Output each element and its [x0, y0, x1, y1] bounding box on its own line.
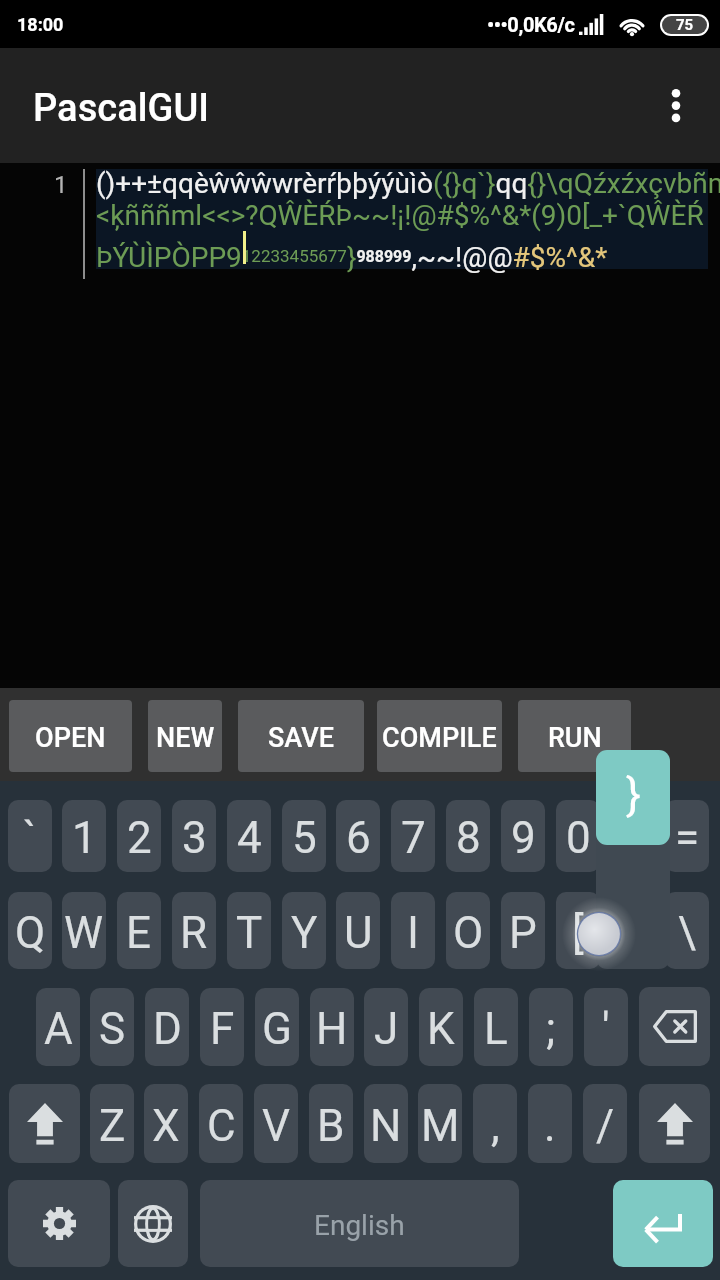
button[interactable]: 9	[501, 800, 545, 872]
button[interactable]: D	[145, 988, 189, 1066]
staticText: }	[626, 769, 641, 821]
button[interactable]: 6	[336, 800, 380, 872]
button[interactable]: E	[117, 892, 161, 969]
button[interactable]: /	[583, 1084, 627, 1163]
button[interactable]: 2	[117, 800, 161, 872]
staticText: C	[207, 1100, 236, 1152]
staticText: X	[152, 1100, 180, 1152]
button[interactable]: U	[336, 892, 380, 969]
button[interactable]: Shift	[639, 1084, 710, 1163]
staticText: [	[572, 907, 584, 959]
staticText: V	[262, 1100, 291, 1152]
button[interactable]: S	[90, 988, 134, 1066]
button[interactable]: Key preview }	[596, 750, 670, 845]
staticText: ;	[546, 1003, 556, 1055]
button[interactable]: Change language	[118, 1180, 188, 1267]
staticText: U	[344, 907, 373, 959]
staticText: 1	[54, 171, 68, 199]
staticText: 5	[292, 812, 317, 864]
button[interactable]: O	[446, 892, 490, 969]
staticText: ,	[491, 1100, 500, 1152]
button[interactable]: =	[665, 800, 709, 872]
staticText: F	[210, 1003, 235, 1055]
button[interactable]: RUN	[518, 700, 631, 772]
button[interactable]: '	[584, 988, 628, 1066]
staticText: 6	[346, 812, 371, 864]
button[interactable]: Z	[90, 1084, 134, 1163]
button[interactable]: 8	[446, 800, 490, 872]
staticText: COMPILE	[382, 722, 497, 754]
button[interactable]: COMPILE	[377, 700, 502, 772]
staticText: SAVE	[268, 722, 335, 754]
button[interactable]: OPEN	[9, 700, 132, 772]
staticText: A	[44, 1003, 73, 1055]
button[interactable]: Y	[282, 892, 326, 969]
button[interactable]: English	[200, 1180, 519, 1267]
staticText: Q	[15, 907, 46, 959]
staticText: N	[370, 1100, 402, 1152]
staticText: -	[626, 812, 639, 864]
staticText: 7	[401, 812, 426, 864]
button[interactable]: Q	[8, 892, 52, 969]
button[interactable]: 4	[227, 800, 271, 872]
staticText: `	[23, 812, 37, 864]
button[interactable]: M	[418, 1084, 462, 1163]
button[interactable]: K	[419, 988, 463, 1066]
button[interactable]: P	[501, 892, 545, 969]
button[interactable]: F	[200, 988, 244, 1066]
staticText: I	[407, 907, 419, 959]
button[interactable]: Shift	[9, 1084, 80, 1163]
button[interactable]: .	[528, 1084, 572, 1163]
button[interactable]: R	[172, 892, 216, 969]
button[interactable]: SAVE	[238, 700, 364, 772]
button[interactable]: `	[8, 800, 52, 872]
button[interactable]: 1	[62, 800, 106, 872]
staticText: ()++±qqèŵŵŵwrèrŕþþýýùìò({}q`}qq{}\qQźxźx…	[96, 167, 720, 274]
button[interactable]: C	[199, 1084, 243, 1163]
button[interactable]: NEW	[148, 700, 222, 772]
staticText: Y	[291, 907, 318, 959]
staticText: 2	[127, 812, 152, 864]
button[interactable]: ;	[529, 988, 573, 1066]
staticText: =	[675, 812, 700, 864]
staticText: T	[236, 907, 263, 959]
button[interactable]: W	[62, 892, 106, 969]
staticText: 3	[182, 812, 207, 864]
button[interactable]: G	[255, 988, 299, 1066]
button[interactable]: V	[254, 1084, 298, 1163]
staticText: D	[153, 1003, 182, 1055]
staticText: Z	[99, 1100, 126, 1152]
staticText: 75	[676, 16, 694, 34]
staticText: •••0,0K6/c	[487, 13, 575, 36]
staticText: .	[544, 1100, 556, 1152]
button[interactable]: More options	[644, 74, 708, 138]
staticText: /	[596, 1100, 615, 1152]
staticText: 0	[566, 812, 591, 864]
button[interactable]: Backspace	[639, 987, 710, 1066]
button[interactable]: ]	[610, 892, 654, 969]
button[interactable]: ,	[473, 1084, 517, 1163]
button[interactable]: 7	[391, 800, 435, 872]
button[interactable]: I	[391, 892, 435, 969]
button[interactable]: Settings	[8, 1180, 110, 1267]
button[interactable]: X	[144, 1084, 188, 1163]
button[interactable]: T	[227, 892, 271, 969]
button[interactable]: H	[310, 988, 354, 1066]
staticText: RUN	[548, 722, 602, 754]
button[interactable]: 0	[556, 800, 600, 872]
button[interactable]: 5	[282, 800, 326, 872]
button[interactable]: J	[364, 988, 408, 1066]
staticText: B	[317, 1100, 345, 1152]
button[interactable]: L	[474, 988, 518, 1066]
button[interactable]: N	[364, 1084, 408, 1163]
button[interactable]: A	[36, 988, 80, 1066]
button[interactable]: [	[556, 892, 600, 969]
button[interactable]: -	[610, 800, 654, 872]
button[interactable]: Enter	[613, 1180, 713, 1267]
staticText: NEW	[156, 722, 215, 754]
staticText: 4	[237, 812, 262, 864]
button[interactable]: B	[309, 1084, 353, 1163]
button[interactable]: 3	[172, 800, 216, 872]
button[interactable]: \	[665, 892, 709, 969]
staticText: 8	[456, 812, 481, 864]
